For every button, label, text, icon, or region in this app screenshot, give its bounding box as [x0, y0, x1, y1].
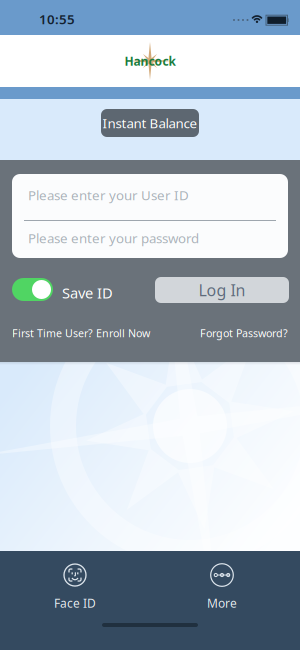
button[interactable]: Forgot Password?	[200, 326, 288, 340]
staticText: 10:55	[39, 10, 75, 28]
button[interactable]: Face ID	[54, 563, 96, 611]
staticText: Please enter your password	[28, 229, 199, 247]
button[interactable]: More	[207, 563, 237, 611]
staticText: Hancock	[124, 53, 175, 69]
button[interactable]: Save ID	[12, 278, 53, 301]
button[interactable]: First Time User? Enroll Now	[12, 326, 150, 340]
staticText: Log In	[198, 279, 245, 301]
staticText: Face ID	[54, 595, 96, 611]
button[interactable]: Instant Balance	[101, 109, 199, 137]
staticText: Instant Balance	[102, 114, 197, 132]
staticText: Save ID	[62, 283, 113, 302]
staticText: More	[207, 595, 237, 611]
button[interactable]: User ID	[12, 174, 288, 216]
button[interactable]: Password	[12, 217, 288, 259]
staticText: Please enter your User ID	[28, 186, 189, 204]
button[interactable]: Log In	[155, 277, 289, 303]
staticText: Forgot Password?	[200, 326, 288, 340]
staticText: First Time User? Enroll Now	[12, 326, 150, 340]
